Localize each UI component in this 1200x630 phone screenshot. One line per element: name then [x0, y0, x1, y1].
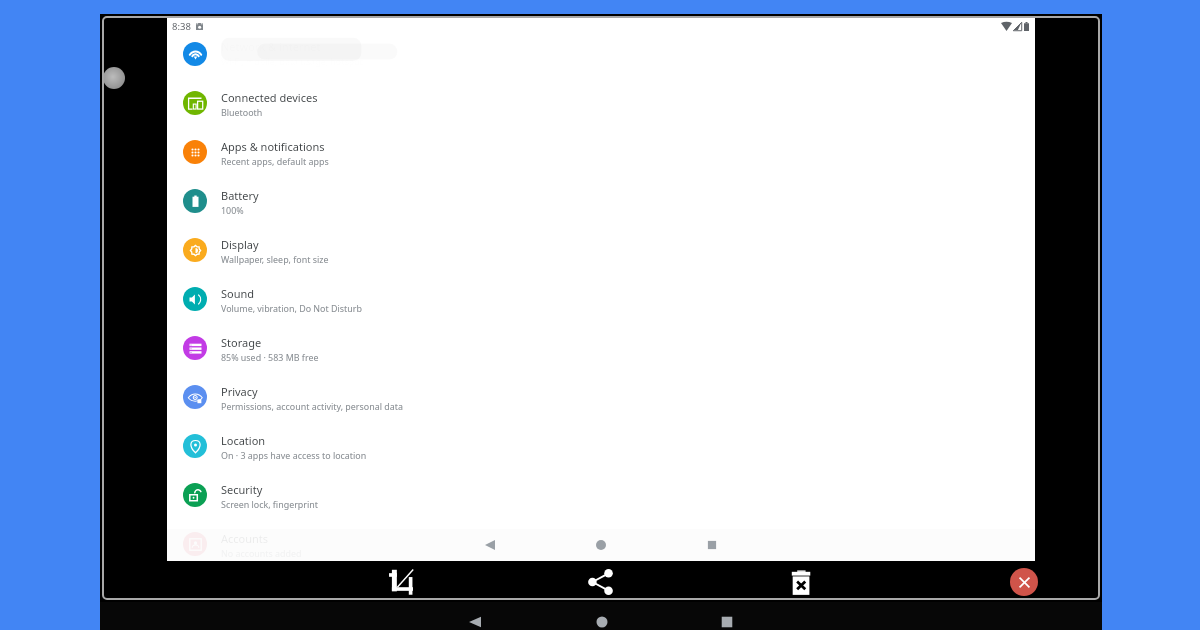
staticText: Permissions, account activity, personal …: [221, 400, 403, 412]
button[interactable]: Storage: [167, 323, 1035, 372]
staticText: No accounts added: [221, 547, 302, 559]
staticText: Sound: [221, 286, 255, 301]
button[interactable]: Display: [167, 225, 1035, 274]
button[interactable]: Sound: [167, 274, 1035, 323]
staticText: Wi-Fi, mobile, data usage, hotspot: [221, 55, 363, 67]
staticText: Display: [221, 237, 259, 252]
staticText: Battery: [221, 188, 259, 203]
button[interactable]: Apps & notifications: [167, 127, 1035, 176]
button[interactable]: Share: [578, 561, 623, 602]
button[interactable]: Home: [589, 615, 615, 629]
button[interactable]: Back: [477, 535, 503, 555]
button[interactable]: Back: [462, 615, 488, 629]
staticText: Wallpaper, sleep, font size: [221, 253, 329, 265]
staticText: Accounts: [221, 531, 269, 546]
staticText: Connected devices: [221, 90, 318, 105]
button[interactable]: Accounts: [167, 519, 1035, 568]
staticText: Privacy: [221, 384, 258, 399]
button[interactable]: Security: [167, 470, 1035, 519]
button[interactable]: Close: [1010, 568, 1038, 596]
staticText: Storage: [221, 335, 262, 350]
staticText: Apps & notifications: [221, 139, 325, 154]
staticText: Bluetooth: [221, 106, 263, 118]
button[interactable]: Crop: [378, 561, 423, 602]
staticText: Security: [221, 482, 263, 497]
button[interactable]: Network & internet: [167, 29, 1035, 78]
staticText: 85% used · 583 MB free: [221, 351, 319, 363]
staticText: Location: [221, 433, 266, 448]
button[interactable]: Delete: [778, 561, 823, 602]
staticText: Volume, vibration, Do Not Disturb: [221, 302, 362, 314]
staticText: 8:38: [172, 20, 191, 33]
button[interactable]: Recents: [699, 535, 725, 555]
staticText: On · 3 apps have access to location: [221, 449, 367, 461]
button[interactable]: Battery: [167, 176, 1035, 225]
staticText: Screen lock, fingerprint: [221, 498, 318, 510]
button[interactable]: Location: [167, 421, 1035, 470]
staticText: Recent apps, default apps: [221, 155, 329, 167]
button[interactable]: Connected devices: [167, 78, 1035, 127]
button[interactable]: Home: [588, 535, 614, 555]
staticText: 100%: [221, 204, 244, 216]
button[interactable]: Recents: [714, 615, 740, 629]
button[interactable]: Privacy: [167, 372, 1035, 421]
